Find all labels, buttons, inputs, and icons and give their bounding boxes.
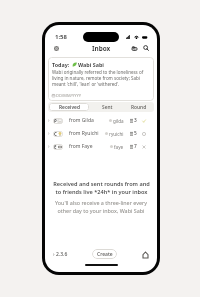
staticText: Received <box>59 104 80 111</box>
staticText: 2.3.6 <box>56 251 68 258</box>
button[interactable]: Archive <box>129 43 139 53</box>
staticText: 1:58 <box>55 33 67 41</box>
button[interactable]: Sent <box>89 103 125 111</box>
staticText: Wabi originally referred to the loneline… <box>52 69 144 87</box>
button[interactable]: › <box>48 140 146 153</box>
staticText: 3 <box>134 117 137 124</box>
button[interactable]: Today: <box>48 57 154 101</box>
staticText: ryuichi <box>109 131 124 137</box>
staticText: Inbox <box>92 44 111 53</box>
staticText: 5 <box>134 130 137 137</box>
staticText: from Gilda <box>69 117 94 124</box>
button[interactable]: Create <box>92 249 117 259</box>
staticText: You'll also receive a three-liner every … <box>55 199 147 215</box>
staticText: DD/MM/YYYY <box>56 93 82 98</box>
staticText: Create <box>97 251 113 258</box>
button[interactable]: Settings <box>51 43 61 53</box>
button[interactable]: › <box>53 251 68 258</box>
button[interactable]: › <box>48 127 146 140</box>
staticText: gilda <box>113 118 124 124</box>
staticText: Round <box>131 104 147 111</box>
button[interactable]: Received <box>49 103 89 111</box>
staticText: from Faye <box>69 143 93 150</box>
staticText: 7 <box>134 143 137 150</box>
button[interactable]: Round <box>125 103 153 111</box>
staticText: › <box>48 130 50 137</box>
staticText: › <box>48 117 50 124</box>
staticText: Wabi Sabi <box>78 61 104 68</box>
staticText: › <box>48 143 50 150</box>
button[interactable]: Home <box>141 250 150 259</box>
staticText: Received and sent rounds from and to fri… <box>53 180 150 196</box>
button[interactable]: Search <box>141 43 151 53</box>
staticText: Sent <box>102 104 113 111</box>
staticText: faye <box>114 144 124 150</box>
staticText: P <box>54 118 57 124</box>
staticText: E <box>54 144 57 150</box>
button[interactable]: › <box>48 114 146 127</box>
staticText: › <box>53 251 55 258</box>
staticText: from Ryuichi <box>69 130 99 137</box>
staticText: C <box>54 131 57 137</box>
staticText: Today: <box>52 61 70 68</box>
